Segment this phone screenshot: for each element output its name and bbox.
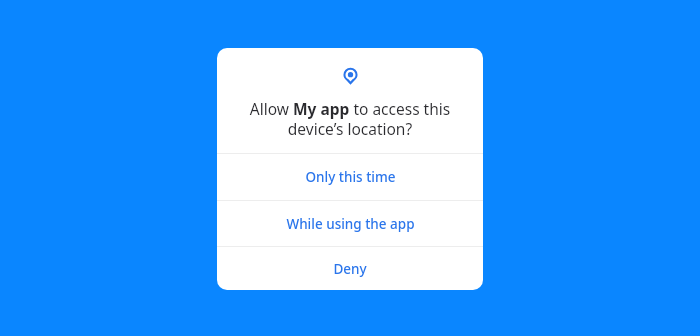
staticText: While using the app [286, 215, 415, 233]
button[interactable]: Only this time [217, 154, 483, 200]
staticText: Allow My app to access this device’s loc… [231, 98, 469, 139]
button[interactable]: Deny [217, 247, 483, 290]
button[interactable]: While using the app [217, 201, 483, 246]
staticText: Deny [333, 260, 367, 278]
staticText: Only this time [305, 168, 396, 186]
other: Location [343, 67, 358, 85]
